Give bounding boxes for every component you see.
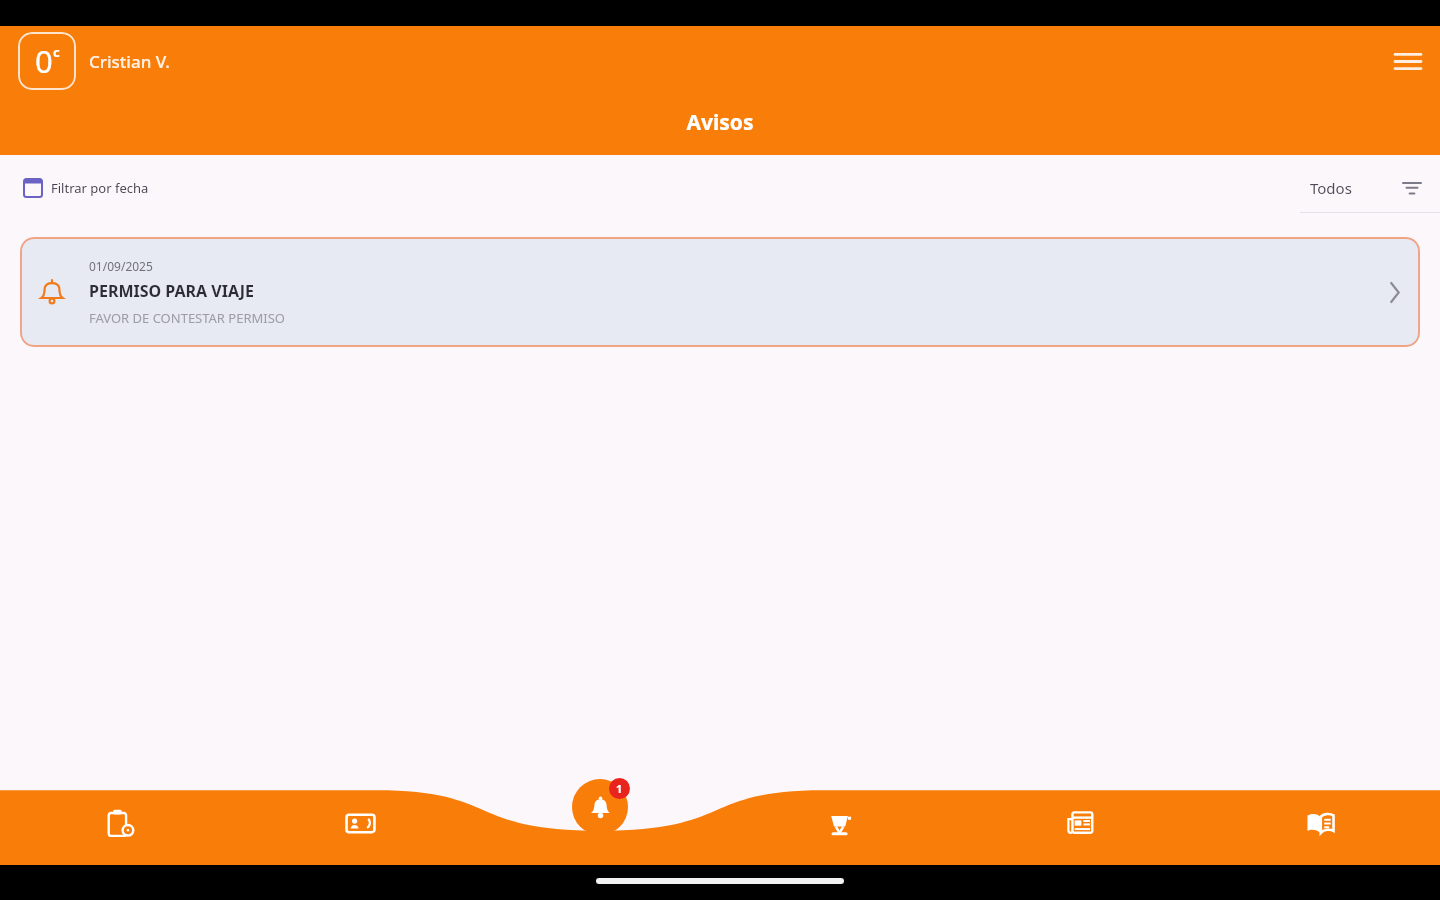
- button[interactable]: Logo: [18, 32, 76, 90]
- staticText: 0: [35, 40, 53, 82]
- staticText: Todos: [1310, 178, 1352, 198]
- staticText: Cristian V.: [89, 50, 170, 73]
- button[interactable]: Noticias: [960, 795, 1200, 851]
- staticText: PERMISO PARA VIAJE: [89, 280, 255, 302]
- button[interactable]: 01/09/2025: [20, 237, 1420, 347]
- button[interactable]: Avisos: [572, 779, 628, 835]
- other: Filter: [1402, 181, 1422, 196]
- staticText: c: [53, 43, 60, 61]
- button[interactable]: Manual: [1200, 795, 1440, 851]
- staticText: Avisos: [686, 108, 754, 137]
- other: Open notice: [1373, 271, 1415, 313]
- button[interactable]: Contactos: [240, 795, 480, 851]
- button[interactable]: Comedor: [720, 795, 960, 851]
- staticText: FAVOR DE CONTESTAR PERMISO: [89, 309, 286, 327]
- button[interactable]: Filtrar por fecha: [24, 179, 149, 197]
- staticText: 1: [616, 781, 623, 796]
- button[interactable]: Todos: [1310, 178, 1422, 198]
- staticText: Filtrar por fecha: [51, 179, 149, 197]
- staticText: 01/09/2025: [89, 258, 153, 274]
- button[interactable]: Tareas: [0, 795, 240, 851]
- button[interactable]: Menu: [1384, 37, 1432, 85]
